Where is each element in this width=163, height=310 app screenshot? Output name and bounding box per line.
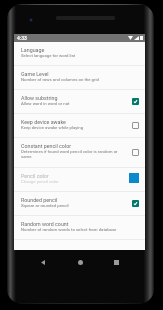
staticText: Allow substring [21, 95, 58, 101]
button[interactable]: Allow substring [14, 90, 145, 114]
staticText: 4:33 [17, 35, 27, 41]
button[interactable]: Random word count [14, 216, 145, 240]
button[interactable]: Constant pencil color [14, 138, 145, 168]
staticText: Determines if found word pencil color is… [21, 149, 118, 159]
staticText: Allow word in word or not [21, 101, 70, 106]
staticText: Random word count [21, 221, 69, 227]
button[interactable]: Back [31, 252, 54, 272]
staticText: Pencil color [21, 173, 49, 179]
staticText: Select language for word list [21, 53, 76, 58]
button[interactable]: Rounded pencil [14, 192, 145, 216]
button[interactable]: Home [69, 252, 92, 272]
staticText: Number of random words to select from da… [21, 227, 117, 232]
staticText: Game Level [21, 71, 49, 77]
staticText: Change pencil color [21, 179, 59, 184]
staticText: Keep device awake while playing [21, 125, 84, 130]
staticText: Constant pencil color [21, 143, 71, 149]
button[interactable]: Game Level [14, 66, 145, 90]
staticText: Rounded pencil [21, 197, 58, 203]
button[interactable]: Language [14, 42, 145, 66]
button[interactable]: Pencil color [14, 168, 145, 192]
staticText: Language [21, 47, 45, 53]
staticText: Keep device awake [21, 119, 66, 125]
button[interactable]: Recent apps [105, 252, 128, 272]
staticText: Square or rounded pencil [21, 203, 69, 208]
button[interactable]: Keep device awake [14, 114, 145, 138]
staticText: Number of rows and columns on the grid [21, 77, 99, 82]
